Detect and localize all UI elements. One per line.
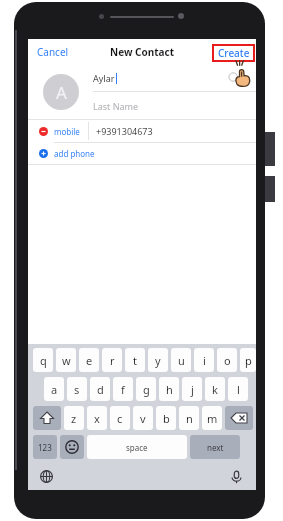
staticText: a [51, 382, 58, 397]
staticText: next [207, 442, 224, 453]
button[interactable]: u [171, 348, 191, 372]
staticText: b [163, 411, 170, 426]
button[interactable]: s [67, 377, 87, 401]
staticText: 123 [38, 442, 52, 453]
staticText: m [207, 411, 218, 426]
staticText: o [224, 353, 231, 368]
staticText: t [133, 353, 137, 368]
staticText: u [178, 353, 185, 368]
button[interactable]: 123 [33, 435, 57, 459]
staticText: k [212, 382, 218, 397]
button[interactable]: Last Name [93, 92, 256, 119]
staticText: +9391304673 [96, 125, 153, 137]
button[interactable]: Cancel [34, 42, 72, 62]
button[interactable]: Voice input [226, 466, 246, 486]
button[interactable]: t [125, 348, 145, 372]
button[interactable]: x [87, 406, 107, 430]
button[interactable]: f [113, 377, 133, 401]
staticText: v [140, 411, 146, 426]
button[interactable]: space [87, 435, 187, 459]
staticText: z [71, 411, 77, 426]
button[interactable]: d [90, 377, 110, 401]
staticText: Cancel [37, 45, 69, 59]
staticText: i [203, 353, 206, 368]
staticText: n [186, 411, 193, 426]
staticText: add phone [54, 148, 95, 159]
staticText: c [117, 411, 123, 426]
staticText: mobile [54, 126, 80, 137]
button[interactable]: c [110, 406, 130, 430]
staticText: r [110, 353, 115, 368]
button[interactable]: Add photo [43, 74, 79, 110]
button[interactable]: r [102, 348, 122, 372]
button[interactable]: b [156, 406, 176, 430]
staticText: Create [218, 46, 250, 60]
button[interactable]: l [228, 377, 248, 401]
staticText: h [166, 382, 173, 397]
button[interactable]: Shift [33, 406, 61, 430]
button[interactable]: Backspace [225, 406, 253, 430]
button[interactable]: w [56, 348, 76, 372]
button[interactable]: mobile [28, 120, 256, 142]
button[interactable]: n [179, 406, 199, 430]
staticText: j [191, 382, 194, 397]
staticText: y [155, 353, 161, 368]
staticText: space [126, 442, 148, 453]
staticText: x [94, 411, 100, 426]
staticText: f [121, 382, 125, 397]
button[interactable]: j [182, 377, 202, 401]
button[interactable]: e [79, 348, 99, 372]
button[interactable]: y [148, 348, 168, 372]
button[interactable]: k [205, 377, 225, 401]
button[interactable]: Create [214, 46, 253, 60]
button[interactable]: Aylar [93, 65, 256, 91]
button[interactable]: Change keyboard [36, 466, 56, 486]
button[interactable]: z [64, 406, 84, 430]
staticText: A [56, 81, 67, 104]
button[interactable]: v [133, 406, 153, 430]
button[interactable]: add phone [28, 143, 256, 164]
button[interactable]: o [217, 348, 237, 372]
button[interactable]: q [33, 348, 53, 372]
staticText: q [40, 353, 47, 368]
staticText: g [143, 382, 150, 397]
button[interactable]: p [240, 348, 256, 372]
button[interactable]: h [159, 377, 179, 401]
button[interactable]: g [136, 377, 156, 401]
staticText: w [62, 353, 71, 368]
button[interactable]: Emoji [60, 435, 84, 459]
staticText: d [97, 382, 104, 397]
staticText: s [74, 382, 80, 397]
button[interactable]: m [202, 406, 222, 430]
staticText: p [245, 353, 252, 368]
staticText: New Contact [110, 45, 175, 59]
staticText: e [86, 353, 93, 368]
staticText: Last Name [93, 100, 139, 112]
button[interactable]: next [190, 435, 240, 459]
button[interactable]: i [194, 348, 214, 372]
staticText: Aylar [93, 72, 115, 84]
staticText: l [237, 382, 240, 397]
button[interactable]: a [44, 377, 64, 401]
